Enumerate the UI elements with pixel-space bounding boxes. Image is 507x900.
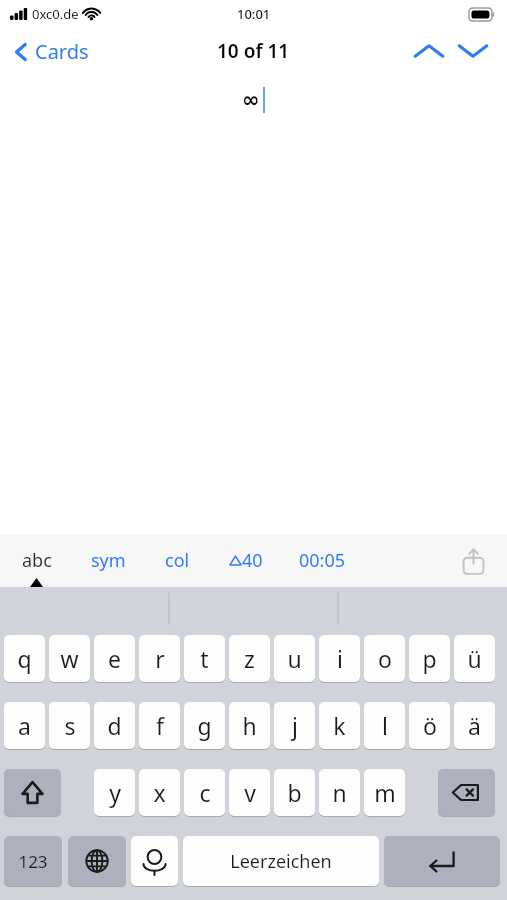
staticText: e: [108, 643, 121, 674]
staticText: x: [153, 777, 166, 808]
staticText: i: [337, 643, 343, 674]
staticText: 0xc0.de: [32, 5, 79, 23]
staticText: o: [378, 643, 392, 674]
button[interactable]: b: [274, 769, 315, 816]
staticText: ü: [467, 643, 482, 674]
staticText: Leerzeichen: [230, 849, 332, 874]
button[interactable]: ö: [409, 702, 450, 749]
button[interactable]: z: [229, 635, 270, 682]
staticText: col: [165, 548, 190, 573]
staticText: 10 of 11: [217, 38, 290, 64]
staticText: 40: [242, 548, 263, 573]
button[interactable]: a: [4, 702, 45, 749]
button[interactable]: r: [139, 635, 180, 682]
button[interactable]: c: [184, 769, 225, 816]
button[interactable]: v: [229, 769, 270, 816]
staticText: j: [292, 710, 298, 741]
button[interactable]: sym: [87, 542, 130, 579]
staticText: b: [287, 777, 302, 808]
other: Return: [384, 836, 500, 886]
staticText: abc: [22, 548, 52, 573]
staticText: n: [332, 777, 347, 808]
button[interactable]: w: [49, 635, 90, 682]
other: Shift: [4, 769, 61, 816]
staticText: m: [374, 777, 396, 808]
staticText: ö: [423, 710, 437, 741]
button[interactable]: Shift: [4, 769, 61, 816]
button[interactable]: q: [4, 635, 45, 682]
staticText: h: [242, 710, 257, 741]
button[interactable]: ä: [454, 702, 495, 749]
button[interactable]: m: [364, 769, 405, 816]
button[interactable]: Cards: [0, 32, 99, 71]
other: Backspace: [438, 769, 495, 816]
staticText: f: [156, 710, 164, 741]
other: Dictate: [131, 836, 178, 886]
staticText: s: [64, 710, 76, 741]
staticText: 123: [18, 850, 48, 873]
staticText: t: [200, 643, 209, 674]
staticText: y: [109, 777, 121, 808]
button[interactable]: y: [94, 769, 135, 816]
button[interactable]: h: [229, 702, 270, 749]
button[interactable]: Backspace: [438, 769, 495, 816]
button[interactable]: k: [319, 702, 360, 749]
button[interactable]: s: [49, 702, 90, 749]
staticText: a: [18, 710, 31, 741]
button[interactable]: abc: [18, 542, 56, 579]
staticText: d: [107, 710, 122, 741]
staticText: 10:01: [237, 5, 271, 23]
button[interactable]: n: [319, 769, 360, 816]
button[interactable]: Dictate: [131, 836, 178, 886]
button[interactable]: Leerzeichen: [183, 836, 379, 886]
staticText: q: [17, 643, 32, 674]
button[interactable]: x: [139, 769, 180, 816]
other: Switch keyboard: [68, 836, 126, 886]
button[interactable]: 40: [225, 542, 267, 579]
button[interactable]: i: [319, 635, 360, 682]
button[interactable]: g: [184, 702, 225, 749]
staticText: k: [333, 710, 346, 741]
button[interactable]: Next card: [451, 31, 495, 71]
staticText: g: [197, 710, 212, 741]
button[interactable]: o: [364, 635, 405, 682]
staticText: 00:05: [299, 548, 346, 573]
button[interactable]: Switch keyboard: [68, 836, 126, 886]
button[interactable]: j: [274, 702, 315, 749]
button[interactable]: f: [139, 702, 180, 749]
staticText: Cards: [35, 38, 89, 65]
button[interactable]: e: [94, 635, 135, 682]
button[interactable]: col: [161, 542, 194, 579]
button[interactable]: l: [364, 702, 405, 749]
staticText: ∞: [242, 88, 260, 112]
staticText: sym: [91, 548, 126, 573]
staticText: z: [244, 643, 255, 674]
staticText: ä: [468, 710, 481, 741]
button[interactable]: Previous card: [407, 31, 451, 71]
button[interactable]: d: [94, 702, 135, 749]
staticText: l: [382, 710, 388, 741]
staticText: r: [155, 643, 165, 674]
button[interactable]: u: [274, 635, 315, 682]
button[interactable]: t: [184, 635, 225, 682]
button[interactable]: Share: [453, 541, 493, 581]
staticText: u: [287, 643, 302, 674]
staticText: c: [199, 777, 211, 808]
staticText: v: [244, 777, 256, 808]
button[interactable]: 123: [4, 836, 62, 886]
button[interactable]: Return: [384, 836, 500, 886]
button[interactable]: p: [409, 635, 450, 682]
staticText: w: [60, 643, 79, 674]
button[interactable]: ü: [454, 635, 495, 682]
button[interactable]: 00:05: [295, 542, 350, 579]
staticText: p: [422, 643, 437, 674]
